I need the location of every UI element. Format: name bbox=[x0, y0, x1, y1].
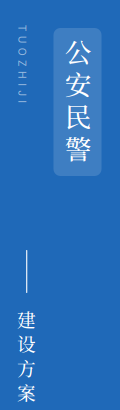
staticText: 民 bbox=[65, 96, 92, 135]
staticText: 方 bbox=[17, 354, 36, 381]
staticText: 公 bbox=[65, 32, 92, 70]
staticText: 建 bbox=[17, 305, 36, 332]
staticText: 警 bbox=[65, 129, 92, 167]
staticText: 安 bbox=[65, 64, 92, 102]
staticText: 案 bbox=[17, 379, 36, 405]
staticText: 设 bbox=[17, 330, 36, 357]
staticText: TUOZHIJI bbox=[0, 58, 61, 70]
